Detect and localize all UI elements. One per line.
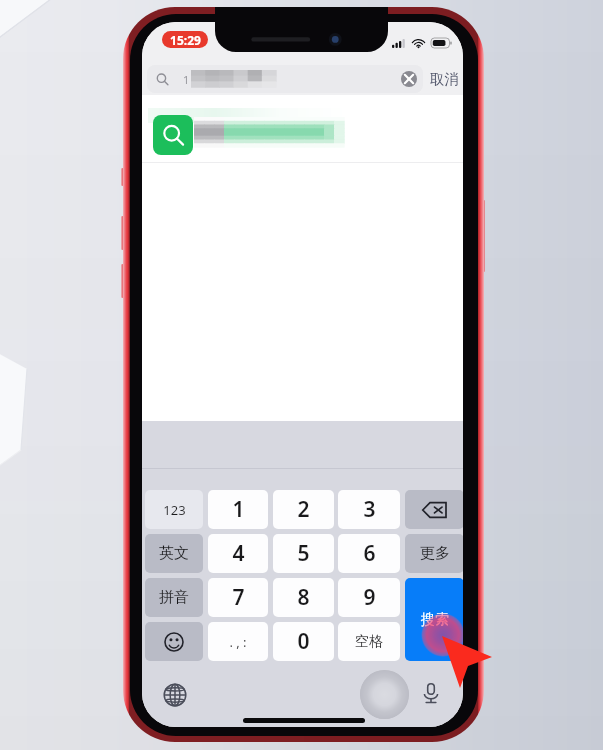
button[interactable]: 9 — [338, 578, 400, 617]
button[interactable]: 123 — [145, 490, 203, 529]
button[interactable]: 取消 — [428, 65, 461, 93]
button[interactable]: 更多 — [405, 534, 463, 573]
staticText: 8 — [297, 583, 310, 612]
other: Backspace — [422, 501, 447, 519]
button[interactable]: Search — [153, 115, 193, 155]
staticText: 9 — [363, 583, 376, 612]
staticText: 1 — [183, 72, 190, 87]
other: Emoji — [164, 632, 184, 652]
button[interactable]: 8 — [273, 578, 334, 617]
staticText: 6 — [363, 539, 376, 568]
staticText: . , : — [229, 633, 247, 651]
button[interactable]: Change keyboard — [163, 683, 187, 707]
button[interactable]: 4 — [208, 534, 268, 573]
staticText: 英文 — [159, 544, 189, 563]
staticText: 2 — [297, 495, 310, 524]
button[interactable]: 0 — [273, 622, 334, 661]
button[interactable]: 英文 — [145, 534, 203, 573]
button[interactable]: 搜索 — [405, 578, 463, 661]
staticText: 取消 — [430, 70, 459, 88]
button[interactable]: Emoji — [145, 622, 203, 661]
staticText: 搜索 — [421, 611, 449, 629]
staticText: 更多 — [420, 544, 450, 563]
button[interactable]: 7 — [208, 578, 268, 617]
button[interactable]: 15:29 — [162, 31, 208, 48]
staticText: 空格 — [355, 633, 383, 651]
button[interactable]: 2 — [273, 490, 334, 529]
button[interactable]: 1 — [147, 65, 423, 93]
button[interactable]: Backspace — [405, 490, 463, 529]
staticText: 5 — [297, 539, 310, 568]
button[interactable]: 1 — [208, 490, 268, 529]
staticText: 4 — [232, 539, 245, 568]
staticText: 3 — [363, 495, 376, 524]
button[interactable]: 拼音 — [145, 578, 203, 617]
staticText: 7 — [232, 583, 245, 612]
staticText: 15:29 — [170, 32, 201, 48]
button[interactable]: . , : — [208, 622, 268, 661]
button[interactable]: Clear text — [401, 71, 417, 87]
staticText: 0 — [297, 627, 310, 656]
staticText: 123 — [163, 501, 186, 519]
button[interactable]: 空格 — [338, 622, 400, 661]
button[interactable]: Handwriting — [360, 670, 409, 719]
button[interactable]: 6 — [338, 534, 400, 573]
button[interactable]: 3 — [338, 490, 400, 529]
button[interactable]: 5 — [273, 534, 334, 573]
staticText: 1 — [232, 495, 245, 524]
button[interactable]: Voice input — [420, 682, 442, 704]
staticText: 拼音 — [159, 588, 189, 607]
